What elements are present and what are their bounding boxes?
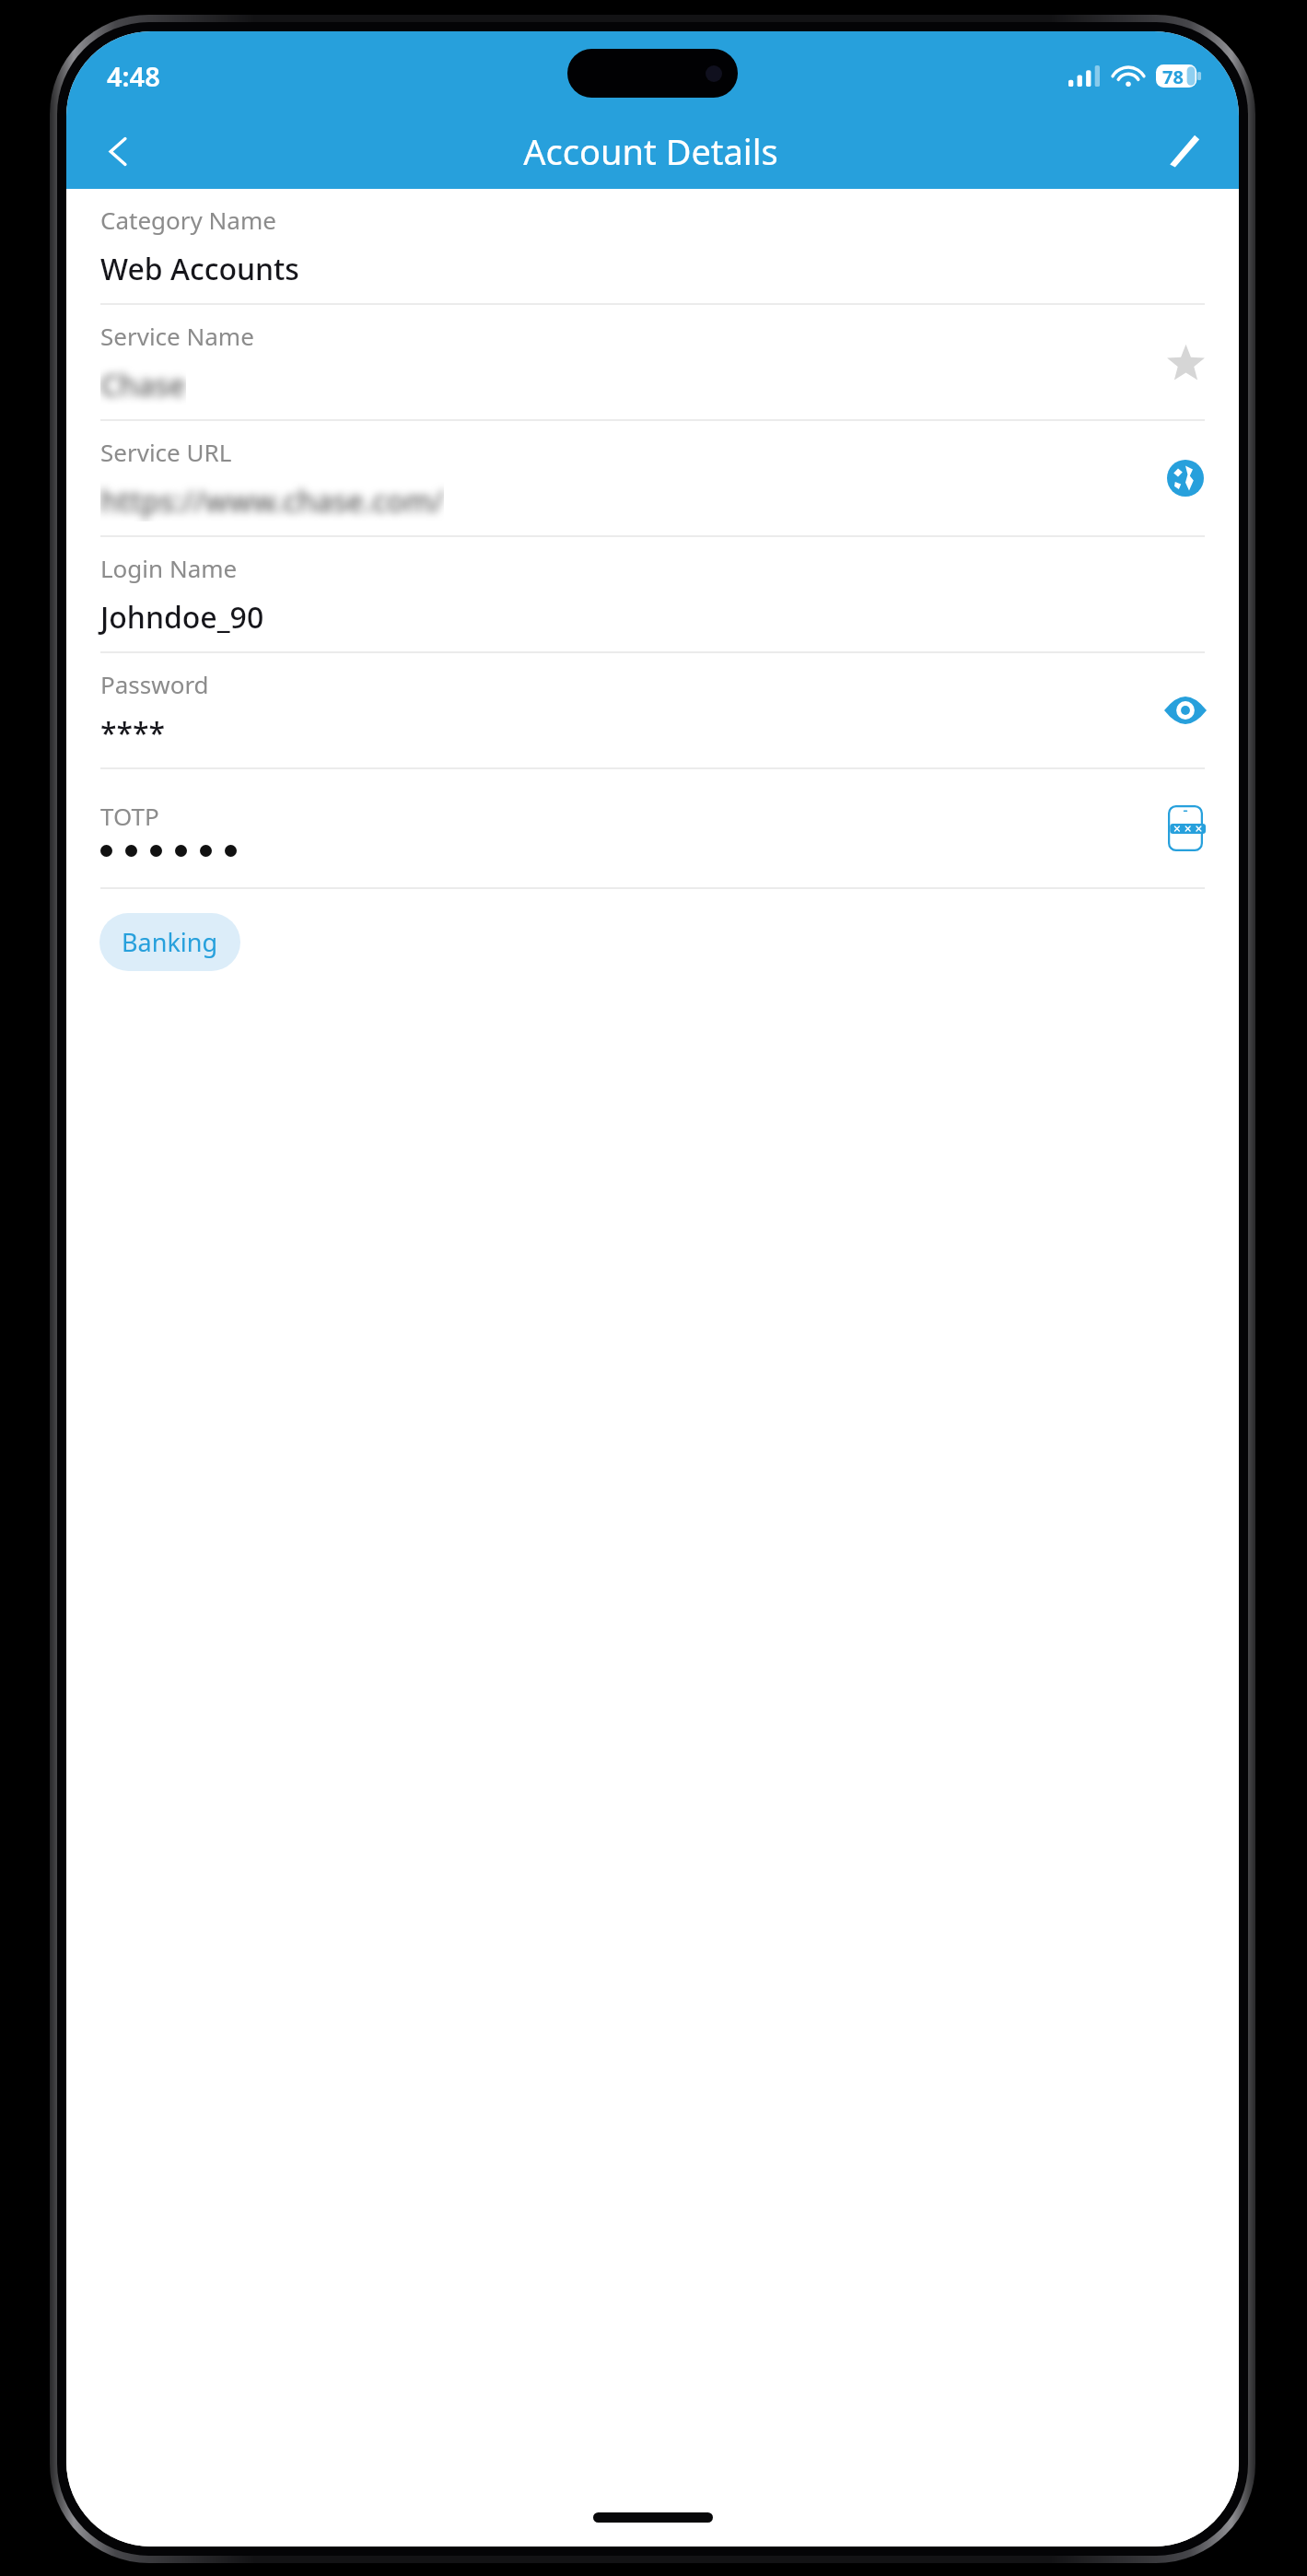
staticText: Web Accounts	[100, 249, 299, 289]
staticText: Account Details	[153, 127, 1149, 175]
button[interactable]: Show password	[1149, 674, 1221, 746]
staticText: TOTP	[100, 800, 159, 832]
staticText: Service URL	[100, 436, 232, 468]
staticText: https://www.chase.com/	[100, 481, 444, 521]
staticText: 4:48	[107, 58, 160, 94]
button[interactable]: Show one-time code	[1149, 792, 1221, 864]
button[interactable]: Edit	[1149, 116, 1219, 186]
staticText: ****	[100, 713, 166, 754]
staticText: Banking	[122, 925, 218, 959]
staticText: Chase	[100, 365, 186, 405]
staticText: 78	[1162, 64, 1184, 88]
button[interactable]: Banking	[99, 913, 240, 971]
button[interactable]: Open website	[1149, 442, 1221, 514]
staticText: Service Name	[100, 320, 254, 352]
button[interactable]: Favourite	[1149, 326, 1221, 398]
staticText: Category Name	[100, 204, 276, 236]
staticText: Johndoe_90	[100, 597, 264, 638]
staticText: Password	[100, 668, 209, 700]
staticText: Login Name	[100, 552, 238, 584]
button[interactable]: Back	[83, 116, 153, 186]
